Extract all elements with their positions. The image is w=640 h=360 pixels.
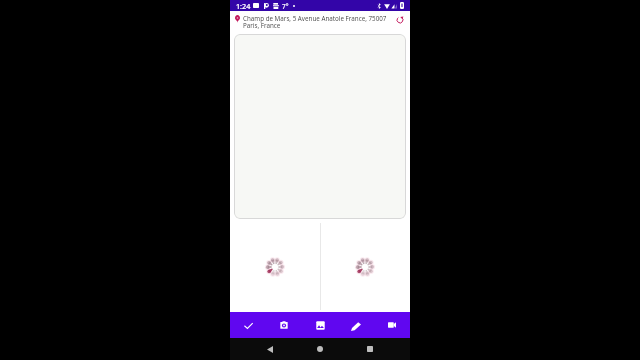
button[interactable]: Recents [363,342,377,356]
button[interactable]: Camera [266,312,302,338]
staticText: Champ de Mars, 5 Avenue Anatole France, … [243,14,391,30]
button[interactable]: Video [374,312,410,338]
button[interactable]: Edit [338,312,374,338]
staticText: 1:24 [236,1,251,11]
staticText: 7° [282,2,289,11]
button[interactable]: Back [263,342,277,356]
button[interactable]: Refresh [393,13,407,27]
button[interactable]: Gallery [302,312,338,338]
button[interactable]: Home [313,342,327,356]
button[interactable]: Done [230,312,266,338]
